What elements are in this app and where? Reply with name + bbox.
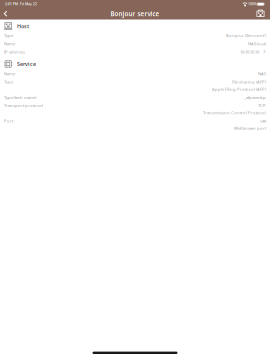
staticText: Port [4,118,13,124]
staticText: 100% [248,2,257,6]
button[interactable]: Back [3,8,14,19]
staticText: Well-known port [234,125,266,131]
staticText: Type (tech name) [4,94,36,100]
staticText: Transmission Control Protocol [203,110,266,115]
staticText: Service [17,60,36,68]
staticText: Apple Filing Protocol (AFP) [212,86,266,92]
staticText: File sharing (AFP) [232,79,266,85]
staticText: Host [17,22,29,30]
staticText: Transport protocol [4,103,43,108]
staticText: 548 [260,118,266,124]
staticText: _afpovertcp [244,94,266,100]
button[interactable]: Server info [256,8,265,19]
staticText: 2:01 PM Fri May 22 [5,2,37,6]
staticText: Name [4,41,15,46]
staticText: 10.10.10.10 [240,49,259,55]
staticText: NAS [258,71,266,76]
staticText: Bonjour (Zeroconf) [226,33,266,38]
staticText: Type [4,33,13,38]
staticText: Type [4,79,13,85]
staticText: Name [4,71,15,76]
staticText: IP address [4,49,25,55]
staticText: NAS.local [248,41,266,46]
staticText: TCP [258,103,266,108]
staticText: Bonjour service [110,10,159,18]
